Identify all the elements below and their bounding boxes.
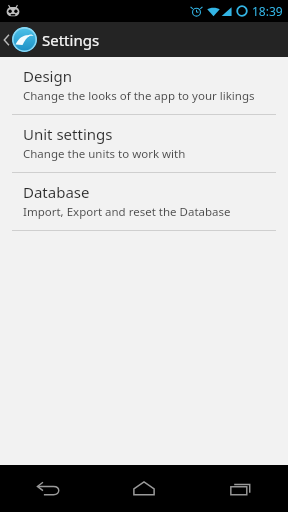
button[interactable]: Design	[0, 57, 288, 114]
staticText: Change the units to work with	[23, 146, 186, 162]
button[interactable]: Database	[0, 173, 288, 230]
button[interactable]: Navigate up	[0, 27, 43, 52]
staticText: Change the looks of the app to your liki…	[23, 88, 255, 104]
staticText: Design	[23, 66, 72, 86]
staticText: 18:39	[252, 3, 283, 19]
staticText: Settings	[42, 30, 100, 50]
button[interactable]: Back	[0, 465, 96, 512]
button[interactable]: Recent apps	[192, 465, 288, 512]
button[interactable]: Unit settings	[0, 115, 288, 172]
staticText: Database	[23, 182, 90, 202]
staticText: Unit settings	[23, 124, 113, 144]
button[interactable]: Home	[96, 465, 192, 512]
staticText: Import, Export and reset the Database	[23, 204, 231, 220]
